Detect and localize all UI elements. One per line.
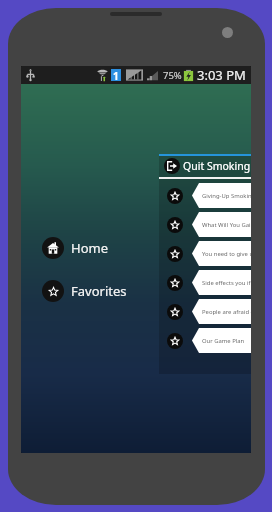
staticText: People are afraid of — [202, 308, 251, 316]
button[interactable]: Quit Smoking Series — [159, 157, 251, 174]
button[interactable]: What Will You Gain — [159, 212, 251, 237]
staticText: 3:03 PM — [197, 66, 246, 84]
button[interactable]: Our Game Plan — [159, 328, 251, 353]
button[interactable]: People are afraid of — [159, 299, 251, 324]
button[interactable]: Side effects you if — [159, 270, 251, 295]
button[interactable]: Favorites — [42, 280, 152, 302]
staticText: Favorites — [71, 282, 127, 300]
staticText: Quit Smoking Series — [183, 159, 251, 173]
staticText: Home — [71, 239, 108, 257]
button[interactable]: You need to give up — [159, 241, 251, 266]
button[interactable]: Home — [42, 237, 152, 259]
staticText: Our Game Plan — [202, 337, 245, 345]
staticText: Giving-Up Smoking — [202, 192, 251, 200]
staticText: 1 — [113, 69, 119, 81]
staticText: You need to give up — [202, 250, 251, 258]
staticText: Side effects you if — [202, 279, 251, 287]
button[interactable]: Giving-Up Smoking — [159, 183, 251, 208]
staticText: 75% — [163, 69, 182, 82]
staticText: What Will You Gain — [202, 221, 251, 229]
